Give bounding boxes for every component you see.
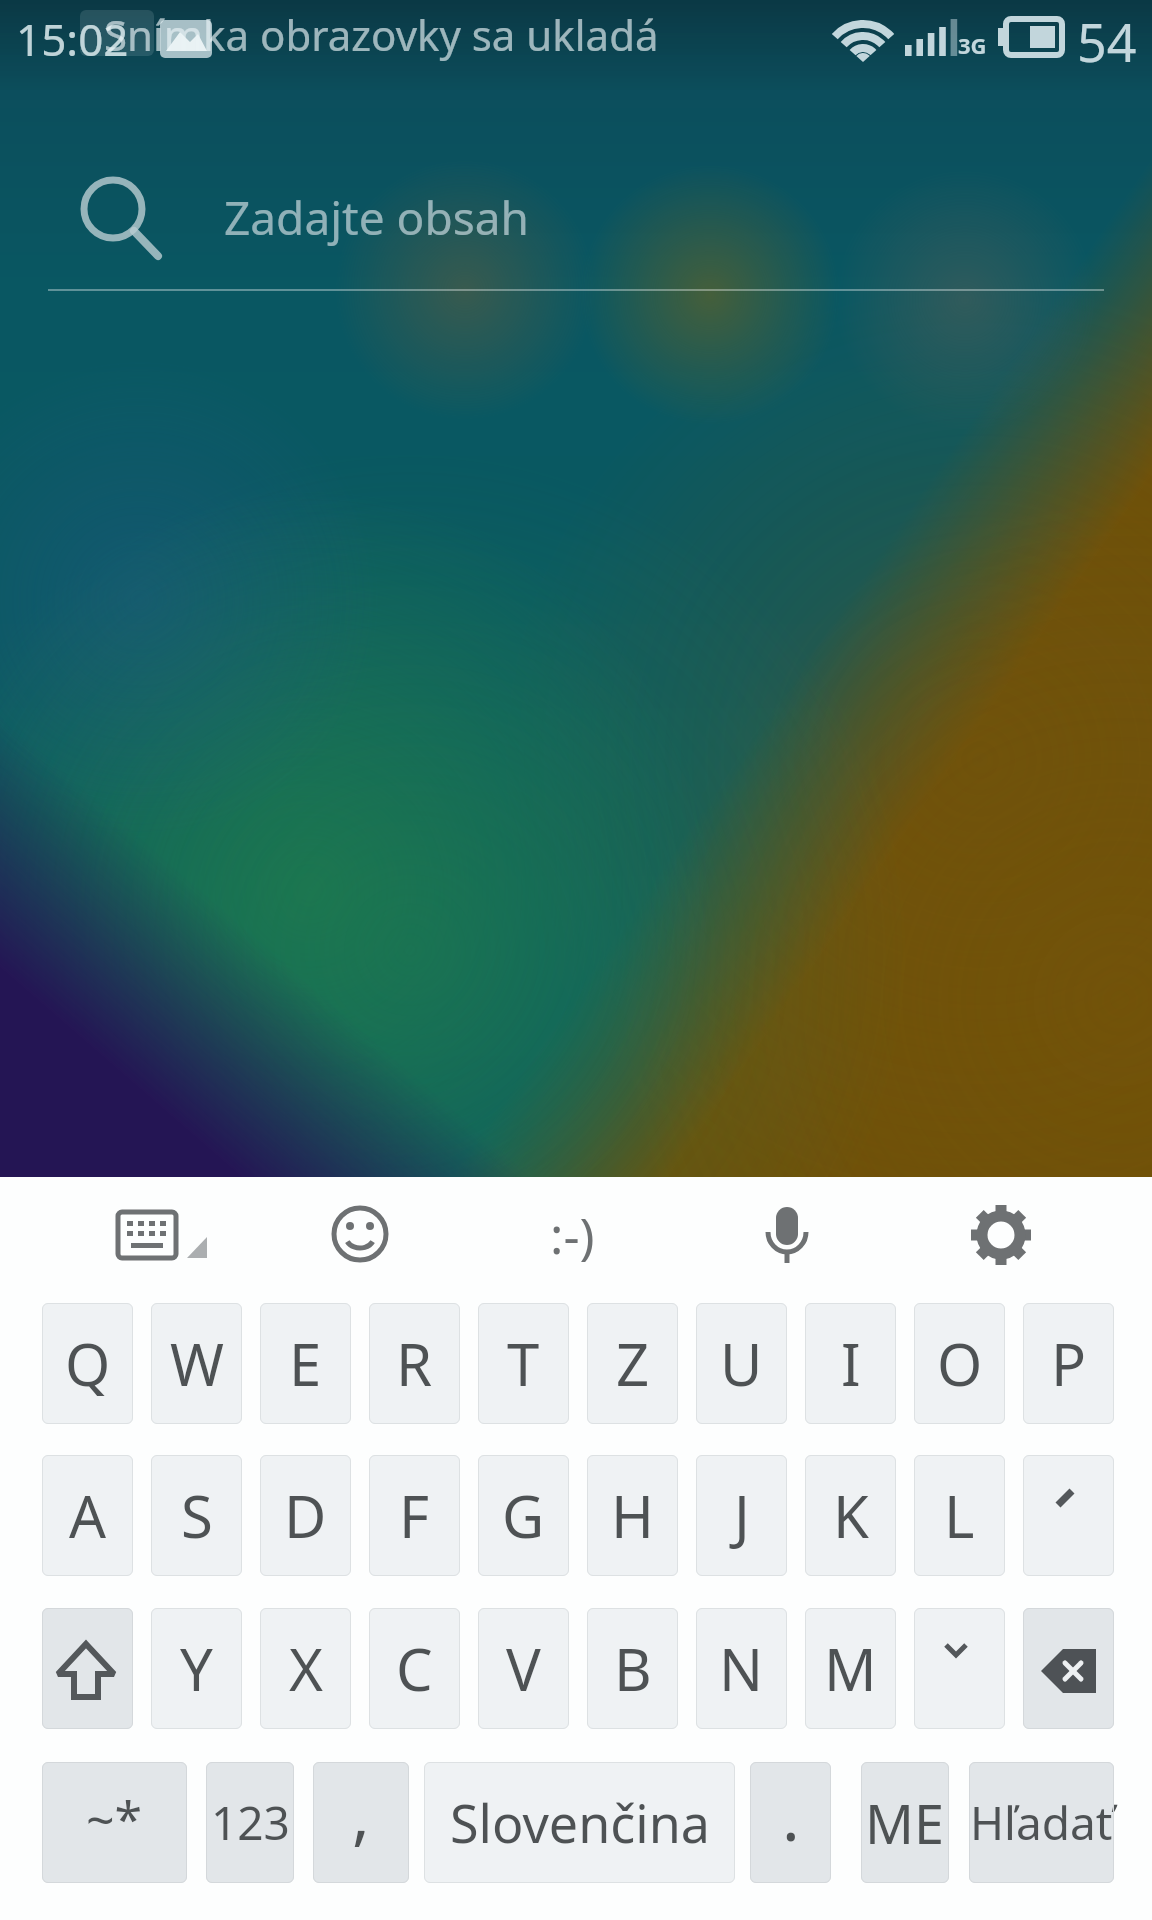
staticText: A bbox=[69, 1476, 107, 1555]
staticText: K bbox=[833, 1476, 869, 1555]
staticText: 54 bbox=[1077, 6, 1137, 77]
staticText: E bbox=[289, 1324, 322, 1403]
staticText: M bbox=[824, 1629, 877, 1708]
staticText: Slovenčina bbox=[450, 1787, 710, 1858]
staticText: :-) bbox=[550, 1201, 595, 1269]
staticText: U bbox=[720, 1324, 763, 1403]
staticText: 3G bbox=[958, 30, 987, 60]
staticText: B bbox=[614, 1629, 652, 1708]
staticText: J bbox=[734, 1476, 750, 1555]
staticText: H bbox=[611, 1476, 654, 1555]
staticText: G bbox=[502, 1476, 545, 1555]
staticText: . bbox=[782, 1770, 800, 1860]
staticText: Z bbox=[616, 1324, 650, 1403]
staticText: Zadajte obsah bbox=[224, 186, 529, 249]
staticText: L bbox=[944, 1476, 975, 1555]
staticText: ME bbox=[865, 1786, 945, 1860]
staticText: P bbox=[1051, 1324, 1087, 1403]
staticText: S bbox=[181, 1476, 213, 1555]
staticText: 15:02 bbox=[16, 9, 129, 69]
staticText: ~* bbox=[86, 1785, 143, 1853]
staticText: C bbox=[396, 1629, 433, 1708]
staticText: I bbox=[841, 1324, 861, 1403]
staticText: X bbox=[289, 1629, 323, 1708]
staticText: V bbox=[506, 1629, 541, 1708]
staticText: N bbox=[719, 1629, 764, 1708]
staticText: R bbox=[396, 1324, 433, 1403]
staticText: O bbox=[937, 1324, 983, 1403]
staticText: W bbox=[170, 1324, 224, 1403]
staticText: D bbox=[284, 1476, 327, 1555]
staticText: , bbox=[352, 1768, 370, 1858]
staticText: Q bbox=[65, 1324, 111, 1403]
staticText: 123 bbox=[211, 1791, 290, 1854]
staticText: F bbox=[399, 1476, 430, 1555]
staticText: Y bbox=[180, 1629, 213, 1708]
staticText: Snímka obrazovky sa ukladá bbox=[104, 6, 659, 63]
staticText: Hľadať bbox=[970, 1791, 1113, 1854]
staticText: T bbox=[507, 1324, 540, 1403]
